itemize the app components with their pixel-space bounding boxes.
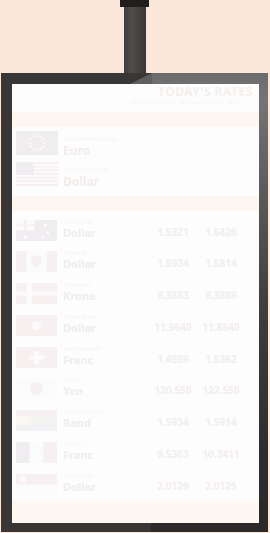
staticText: 2.0129	[143, 479, 203, 493]
staticText: Dollar	[63, 320, 96, 335]
button[interactable]: UNITED STATES	[12, 162, 259, 190]
staticText: 1.6426	[191, 225, 251, 239]
staticText: Dollar	[63, 173, 99, 189]
staticText: 1.5934	[143, 256, 203, 270]
button[interactable]: DENMARK	[12, 278, 259, 310]
staticText: Dollar	[63, 479, 96, 494]
staticText: 1.5914	[191, 415, 251, 429]
staticText: Franc	[63, 352, 94, 367]
button[interactable]: CANADA	[12, 246, 259, 278]
button[interactable]: SOUTH AFRICA	[12, 405, 259, 437]
staticText: TODAY'S RATES	[158, 83, 253, 99]
button[interactable]: FRANCE	[12, 437, 259, 469]
staticText: Dollar	[63, 256, 96, 271]
staticText: 9.5363	[143, 447, 203, 461]
staticText: 2.0125	[191, 479, 251, 493]
staticText: 1.4559	[143, 352, 203, 366]
staticText: 10.2411	[191, 447, 251, 461]
staticText: Franc	[63, 447, 94, 462]
staticText: Dollar	[63, 225, 96, 240]
staticText: 120.550	[143, 383, 203, 397]
staticText: 9.3889	[191, 288, 251, 302]
staticText: 1.5814	[191, 256, 251, 270]
staticText: Yen	[63, 383, 84, 398]
staticText: 1.5934	[143, 415, 203, 429]
staticText: 1.5362	[191, 352, 251, 366]
staticText: 11.9640	[143, 320, 203, 334]
button[interactable]: HONG KONG	[12, 310, 259, 342]
staticText: 1.5321	[143, 225, 203, 239]
staticText: Krona	[63, 288, 96, 303]
button[interactable]: EUROPEAN UNION	[12, 131, 259, 159]
button[interactable]: SWITZERLAND	[12, 342, 259, 374]
button[interactable]: JAPAN	[12, 373, 259, 405]
staticText: 122.550	[191, 383, 251, 397]
staticText: Rand	[63, 415, 91, 430]
button[interactable]: AUSTRALIA	[12, 215, 259, 247]
button[interactable]: SINGAPORE	[12, 469, 259, 501]
staticText: Euro	[63, 142, 91, 158]
staticText: 9.3883	[143, 288, 203, 302]
staticText: 11.8640	[191, 320, 251, 334]
